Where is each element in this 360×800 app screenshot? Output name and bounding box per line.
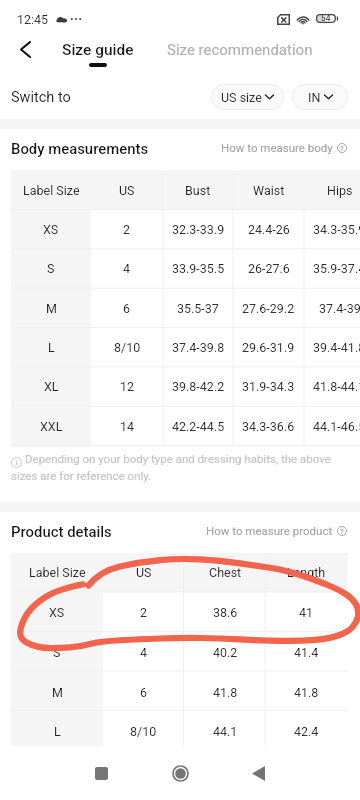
staticText: 24.4-26 [248,222,290,237]
staticText: 37.4-39.8 [172,340,225,355]
button[interactable]: How to measure product [206,524,347,537]
staticText: S [53,645,61,660]
button[interactable]: Size recommendation [160,34,320,78]
staticText: XS [49,605,65,620]
staticText: Depending on your body type and dressing… [11,452,347,483]
staticText: 42.2-44.5 [172,419,225,434]
staticText: 44.1 [213,724,238,739]
staticText: 34.3-36.6 [242,419,295,434]
staticText: 37.4-39 [319,301,360,316]
staticText: Bust [185,183,211,198]
staticText: Hips [327,183,353,198]
staticText: Length [287,565,326,580]
staticText: XS [43,222,59,237]
staticText: 54 [321,13,331,22]
staticText: 12 [120,379,135,394]
button[interactable]: US size [211,84,284,110]
button[interactable]: Back [234,749,282,797]
staticText: 4 [123,261,131,276]
staticText: 8/10 [114,340,141,355]
staticText: L [54,724,61,739]
staticText: How to measure body [221,141,333,154]
staticText: 29.6-31.9 [242,340,295,355]
staticText: 41.8 [294,685,319,700]
staticText: 32.3-33.9 [172,222,225,237]
staticText: XXL [40,419,63,434]
staticText: 44.1-46.5 [313,419,360,434]
staticText: IN [308,90,321,105]
staticText: XL [44,379,59,394]
staticText: Label Size [29,565,86,580]
staticText: Switch to [11,89,71,106]
staticText: 12:45 [17,12,49,27]
button[interactable]: How to measure body [221,141,347,154]
staticText: 41 [299,605,314,620]
staticText: 2 [140,605,148,620]
staticText: L [48,340,55,355]
staticText: 2 [123,222,131,237]
button[interactable]: Home [156,749,204,797]
staticText: M [52,685,63,700]
button[interactable]: IN [292,84,348,110]
staticText: 31.9-34.3 [242,379,295,394]
staticText: 34.3-35.9 [313,222,360,237]
staticText: Product details [11,523,112,540]
staticText: US size [221,90,262,105]
staticText: Label Size [23,183,80,198]
staticText: 41.8-44.1 [313,379,360,394]
button[interactable]: Size guide [53,34,143,78]
staticText: 40.2 [213,645,238,660]
staticText: 6 [140,685,148,700]
staticText: Body measurements [11,140,149,157]
button[interactable]: Back [7,31,43,67]
staticText: Size recommendation [167,41,313,59]
staticText: Waist [253,183,285,198]
staticText: How to measure product [206,524,333,537]
staticText: 35.5-37 [177,301,219,316]
staticText: 4 [140,645,148,660]
staticText: 39.4-41.8 [313,340,360,355]
staticText: ? [340,144,344,153]
staticText: US [136,565,152,580]
staticText: 6 [123,301,131,316]
staticText: 41.8 [213,685,238,700]
staticText: 42.4 [294,724,319,739]
button[interactable]: Recents [77,749,125,797]
staticText: 27.6-29.2 [242,301,295,316]
staticText: Chest [209,565,242,580]
staticText: ? [340,527,344,536]
staticText: 8/10 [130,724,157,739]
staticText: 14 [120,419,135,434]
staticText: US [119,183,135,198]
staticText: M [46,301,57,316]
staticText: 33.9-35.5 [172,261,225,276]
staticText: 41.4 [294,645,319,660]
staticText: 38.6 [213,605,238,620]
staticText: 39.8-42.2 [172,379,225,394]
staticText: Size guide [62,41,134,59]
staticText: 35.9-37.4 [313,261,360,276]
staticText: S [47,261,55,276]
staticText: 26-27.6 [248,261,290,276]
